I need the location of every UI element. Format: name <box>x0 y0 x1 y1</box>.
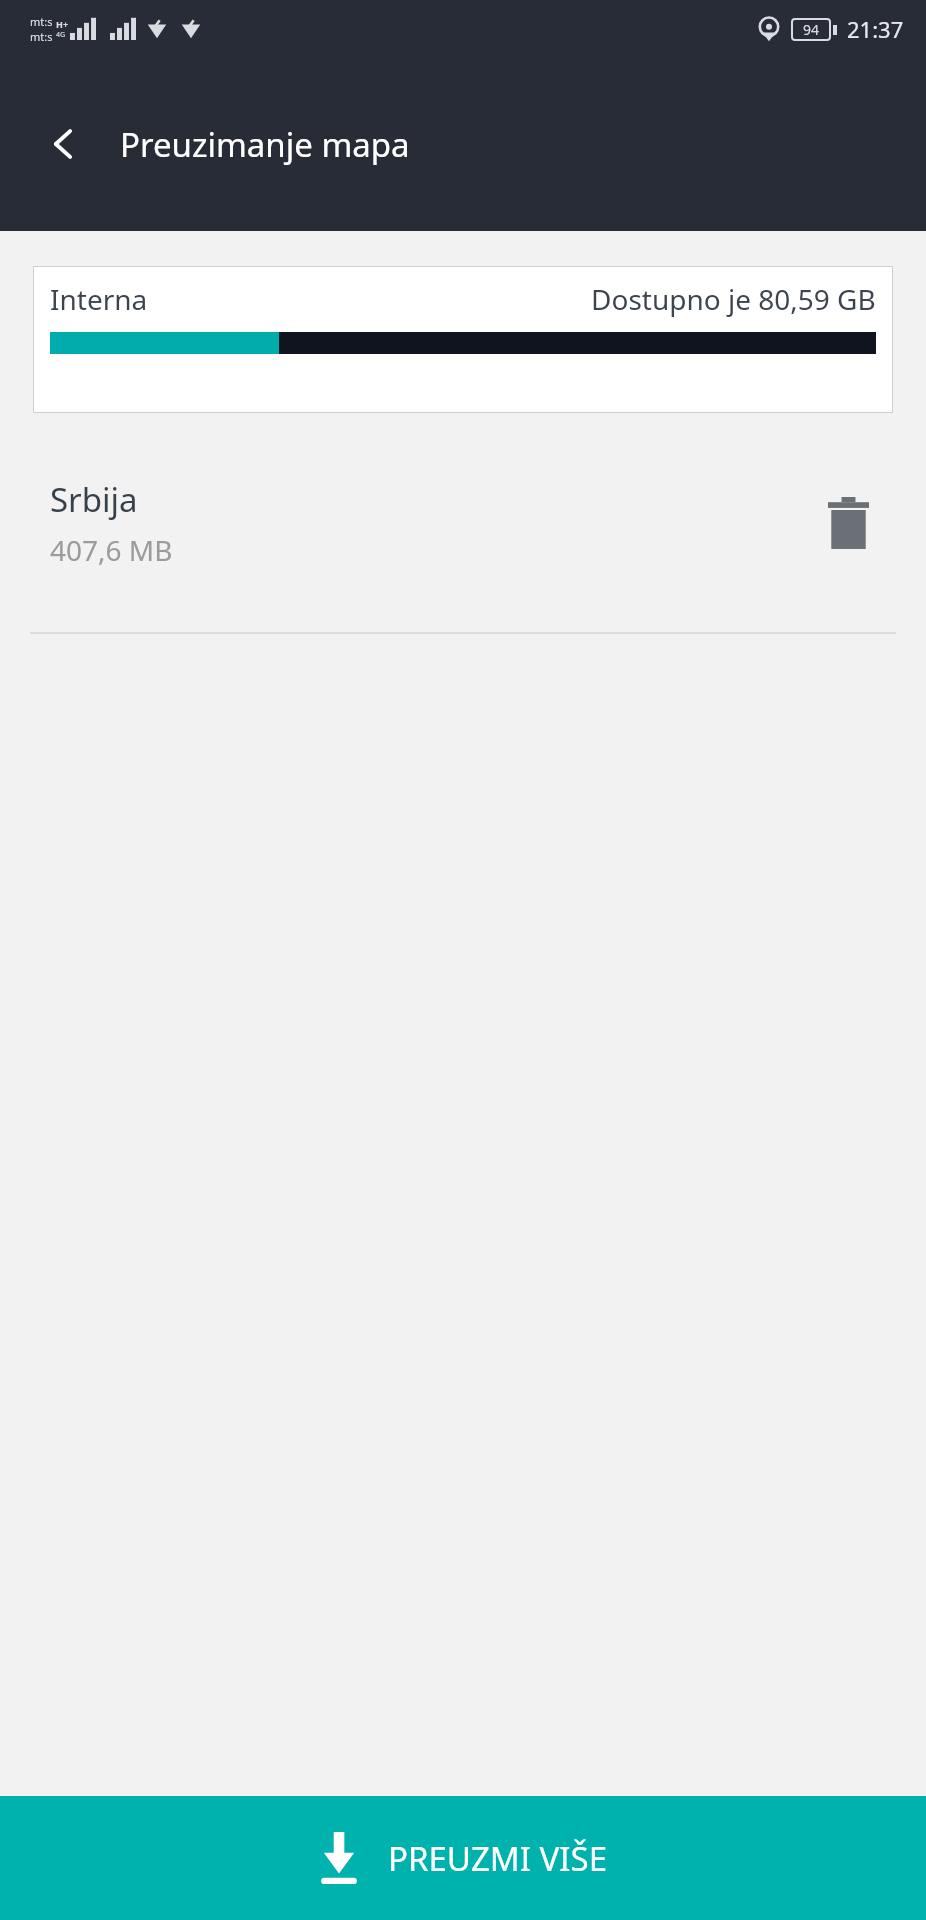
button[interactable]: Back <box>28 108 100 180</box>
staticText: Dostupno je 80,59 GB <box>591 280 876 318</box>
button[interactable]: Interna <box>33 266 893 413</box>
staticText: PREUZMI VIŠE <box>388 1836 607 1881</box>
staticText: Preuzimanje mapa <box>120 122 410 167</box>
staticText: 94 <box>803 20 820 39</box>
staticText: 407,6 MB <box>50 531 173 569</box>
staticText: mt:s <box>30 29 53 44</box>
staticText: 21:37 <box>847 14 904 44</box>
staticText: Srbija <box>50 477 138 522</box>
staticText: mt:s <box>30 14 53 29</box>
button[interactable]: Delete map <box>810 485 886 561</box>
staticText: Interna <box>50 280 148 318</box>
staticText: H+ <box>56 18 69 30</box>
staticText: 4G <box>56 30 66 40</box>
button[interactable]: Srbija <box>0 413 926 632</box>
button[interactable]: PREUZMI VIŠE <box>0 1796 926 1920</box>
